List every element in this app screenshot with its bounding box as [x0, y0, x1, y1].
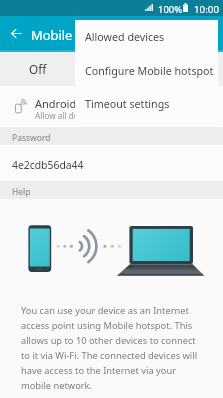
staticText: 100% — [158, 3, 183, 16]
staticText: Allowed devices — [85, 30, 165, 45]
button[interactable]: 4e2cdb56da44 — [0, 145, 223, 181]
staticText: You can use your device as an Internet a… — [21, 304, 198, 391]
staticText: Configure Mobile hotspot — [85, 64, 214, 79]
button[interactable]: Timeout settings — [75, 88, 218, 121]
staticText: Password — [12, 132, 51, 144]
staticText: AndroidHotspot1234 — [35, 96, 143, 111]
staticText: 10:00 — [194, 3, 220, 16]
staticText: Timeout settings — [85, 97, 170, 112]
button[interactable]: AndroidHotspot1234 — [0, 86, 223, 127]
button[interactable]: Navigate up — [5, 16, 27, 50]
staticText: 4e2cdb56da44 — [12, 158, 84, 172]
staticText: Help — [12, 186, 31, 198]
staticText: Off — [29, 61, 47, 77]
button[interactable]: Off — [0, 50, 223, 86]
staticText: Mobile hotspot — [31, 26, 123, 44]
button[interactable]: Configure Mobile hotspot — [75, 54, 218, 88]
staticText: Allow all devices — [35, 110, 97, 121]
button[interactable]: Allowed devices — [75, 20, 218, 54]
